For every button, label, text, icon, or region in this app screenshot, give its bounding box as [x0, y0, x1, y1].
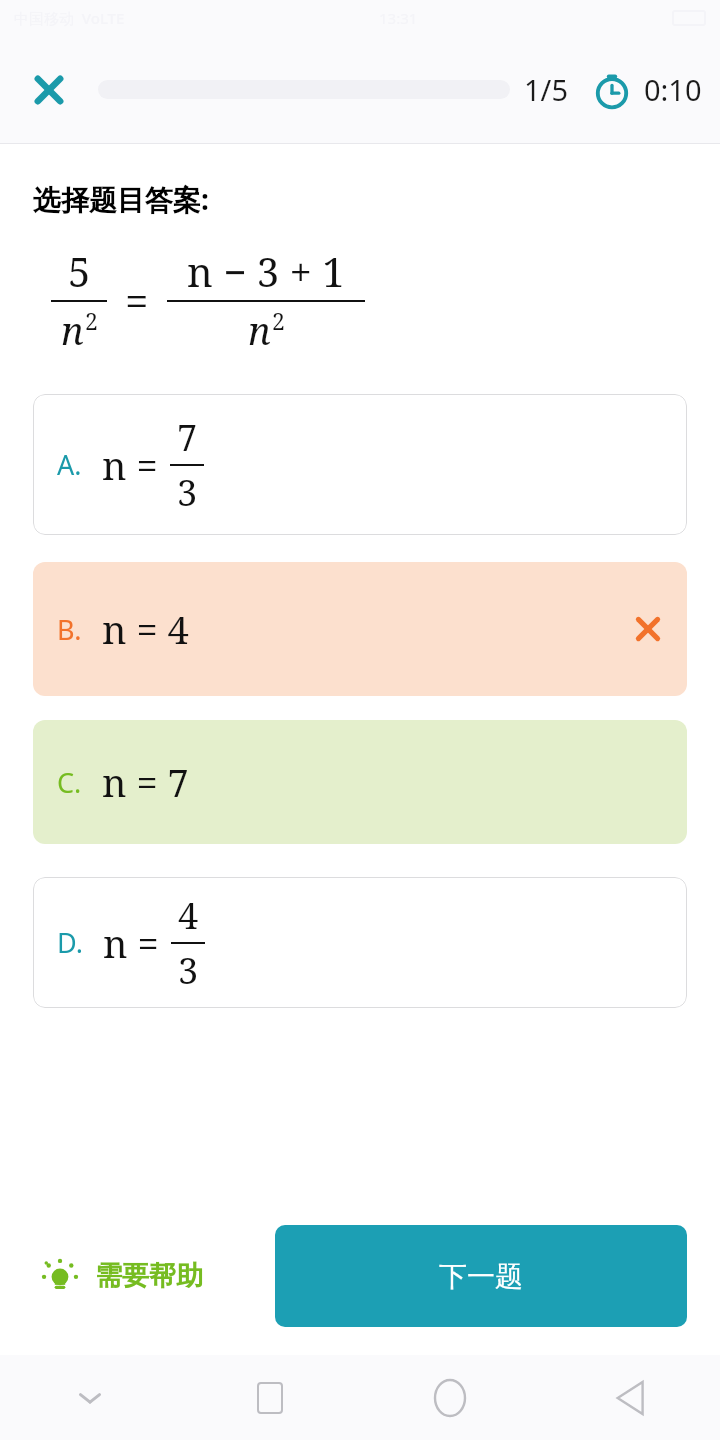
- staticText: 3: [177, 468, 198, 517]
- staticText: n =: [103, 917, 159, 969]
- staticText: 选择题目答案:: [33, 180, 209, 218]
- staticText: B.: [57, 611, 82, 648]
- button[interactable]: B.: [33, 562, 687, 696]
- button[interactable]: Recent apps: [180, 1355, 360, 1440]
- staticText: n =: [102, 439, 158, 491]
- staticText: n = 4: [102, 603, 189, 655]
- staticText: n − 3 + 1: [187, 244, 345, 298]
- staticText: 4: [178, 891, 199, 940]
- button[interactable]: C.: [33, 720, 687, 844]
- button[interactable]: 需要帮助: [33, 1241, 209, 1311]
- staticText: 需要帮助: [95, 1259, 203, 1293]
- staticText: n: [248, 304, 271, 356]
- staticText: 下一题: [439, 1259, 523, 1294]
- button[interactable]: Back: [540, 1355, 720, 1440]
- button[interactable]: Hide keyboard: [0, 1355, 180, 1440]
- staticText: A.: [57, 446, 82, 483]
- button[interactable]: A.: [33, 394, 687, 535]
- staticText: C.: [57, 764, 82, 801]
- button[interactable]: Timer: [590, 68, 634, 112]
- button[interactable]: 下一题: [275, 1225, 687, 1327]
- staticText: n = 7: [102, 756, 189, 808]
- staticText: 1/5: [524, 70, 568, 109]
- button[interactable]: D.: [33, 877, 687, 1008]
- staticText: 5: [68, 244, 91, 298]
- staticText: n: [61, 304, 84, 356]
- staticText: 0:10: [644, 70, 702, 109]
- staticText: 2: [272, 305, 285, 336]
- staticText: =: [125, 272, 149, 329]
- staticText: D.: [57, 924, 83, 961]
- button[interactable]: Close: [18, 59, 80, 121]
- staticText: 2: [85, 305, 98, 336]
- staticText: 3: [178, 946, 199, 995]
- button[interactable]: Home: [360, 1355, 540, 1440]
- staticText: 7: [177, 413, 198, 462]
